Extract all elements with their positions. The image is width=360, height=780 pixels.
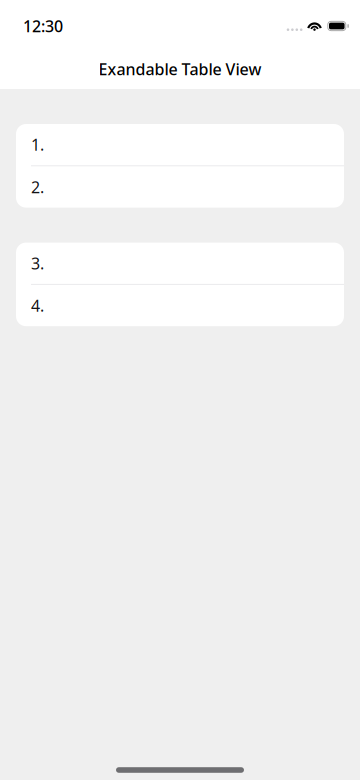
staticText: 4. <box>31 295 44 316</box>
staticText: Exandable Table View <box>98 58 261 80</box>
button[interactable]: 4. <box>16 285 344 326</box>
button[interactable]: 2. <box>16 166 344 208</box>
staticText: 2. <box>31 176 44 197</box>
button[interactable]: 1. <box>16 124 344 165</box>
staticText: 3. <box>31 253 44 274</box>
staticText: 12:30 <box>23 15 63 37</box>
staticText: 1. <box>31 134 44 155</box>
button[interactable]: 3. <box>16 243 344 284</box>
